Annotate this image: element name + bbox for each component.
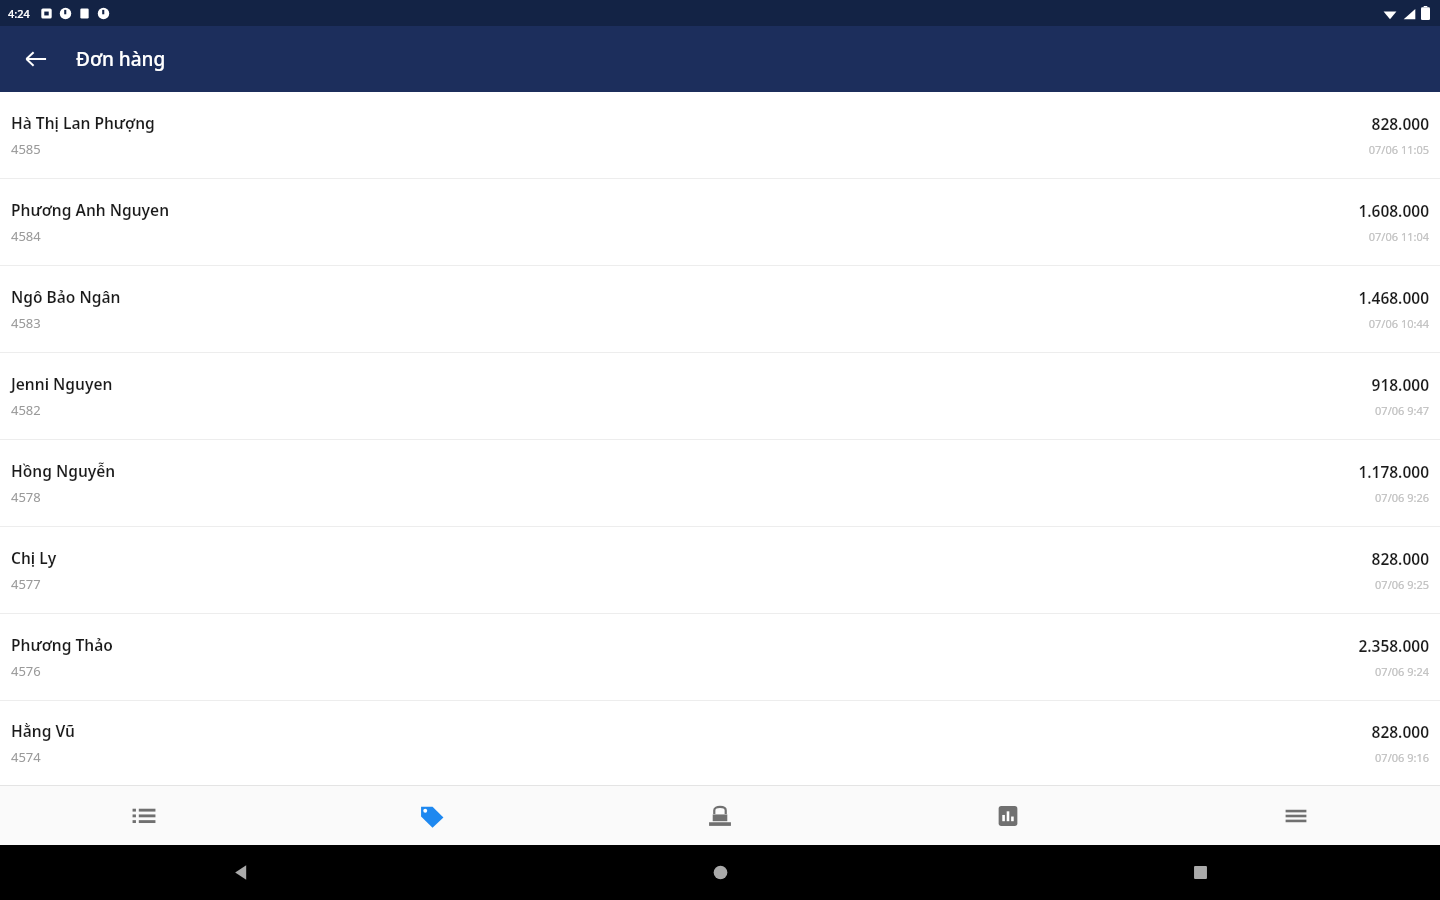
staticText: Jenni Nguyen bbox=[11, 373, 113, 394]
staticText: 4574 bbox=[11, 748, 41, 766]
button[interactable]: Cashier bbox=[576, 786, 864, 845]
button[interactable]: Menu bbox=[1152, 786, 1440, 845]
staticText: 1.468.000 bbox=[1358, 287, 1429, 308]
staticText: 07/06 9:25 bbox=[1375, 577, 1429, 592]
staticText: 07/06 11:04 bbox=[1368, 229, 1429, 244]
button[interactable]: Orders list bbox=[0, 786, 288, 845]
staticText: 07/06 9:16 bbox=[1375, 750, 1429, 765]
staticText: Hồng Nguyễn bbox=[11, 460, 116, 481]
staticText: 07/06 9:26 bbox=[1375, 490, 1429, 505]
staticText: Hằng Vũ bbox=[11, 720, 75, 741]
staticText: Phương Thảo bbox=[11, 634, 113, 655]
staticText: 4585 bbox=[11, 140, 41, 158]
staticText: 918.000 bbox=[1371, 374, 1429, 395]
staticText: 4584 bbox=[11, 227, 41, 245]
staticText: 2.358.000 bbox=[1358, 635, 1429, 656]
staticText: 07/06 11:05 bbox=[1368, 142, 1429, 157]
staticText: 828.000 bbox=[1371, 113, 1429, 134]
button[interactable]: Recent apps bbox=[960, 845, 1440, 900]
staticText: 4578 bbox=[11, 488, 41, 506]
button[interactable]: Hà Thị Lan Phượng bbox=[0, 92, 1440, 178]
staticText: 07/06 10:44 bbox=[1368, 316, 1429, 331]
staticText: 1.608.000 bbox=[1358, 200, 1429, 221]
staticText: Ngô Bảo Ngân bbox=[11, 286, 121, 307]
button[interactable]: Jenni Nguyen bbox=[0, 353, 1440, 439]
staticText: Hà Thị Lan Phượng bbox=[11, 112, 155, 133]
button[interactable]: Ngô Bảo Ngân bbox=[0, 266, 1440, 352]
staticText: 4576 bbox=[11, 662, 41, 680]
button[interactable]: Chị Ly bbox=[0, 527, 1440, 613]
button[interactable]: Products bbox=[288, 786, 576, 845]
staticText: 07/06 9:24 bbox=[1375, 664, 1429, 679]
button[interactable]: Back bbox=[0, 845, 480, 900]
staticText: 828.000 bbox=[1371, 548, 1429, 569]
staticText: Đơn hàng bbox=[76, 46, 166, 72]
button[interactable]: Home bbox=[480, 845, 960, 900]
staticText: 4583 bbox=[11, 314, 41, 332]
staticText: 828.000 bbox=[1371, 721, 1429, 742]
staticText: 1.178.000 bbox=[1358, 461, 1429, 482]
button[interactable]: Phương Thảo bbox=[0, 614, 1440, 700]
staticText: 4:24 bbox=[8, 6, 30, 21]
staticText: 4577 bbox=[11, 575, 41, 593]
staticText: 07/06 9:47 bbox=[1375, 403, 1429, 418]
button[interactable]: Back bbox=[14, 37, 58, 81]
staticText: Phương Anh Nguyen bbox=[11, 199, 170, 220]
button[interactable]: Reports bbox=[864, 786, 1152, 845]
staticText: 4582 bbox=[11, 401, 41, 419]
staticText: Chị Ly bbox=[11, 547, 57, 568]
button[interactable]: Hằng Vũ bbox=[0, 701, 1440, 785]
button[interactable]: Phương Anh Nguyen bbox=[0, 179, 1440, 265]
button[interactable]: Hồng Nguyễn bbox=[0, 440, 1440, 526]
